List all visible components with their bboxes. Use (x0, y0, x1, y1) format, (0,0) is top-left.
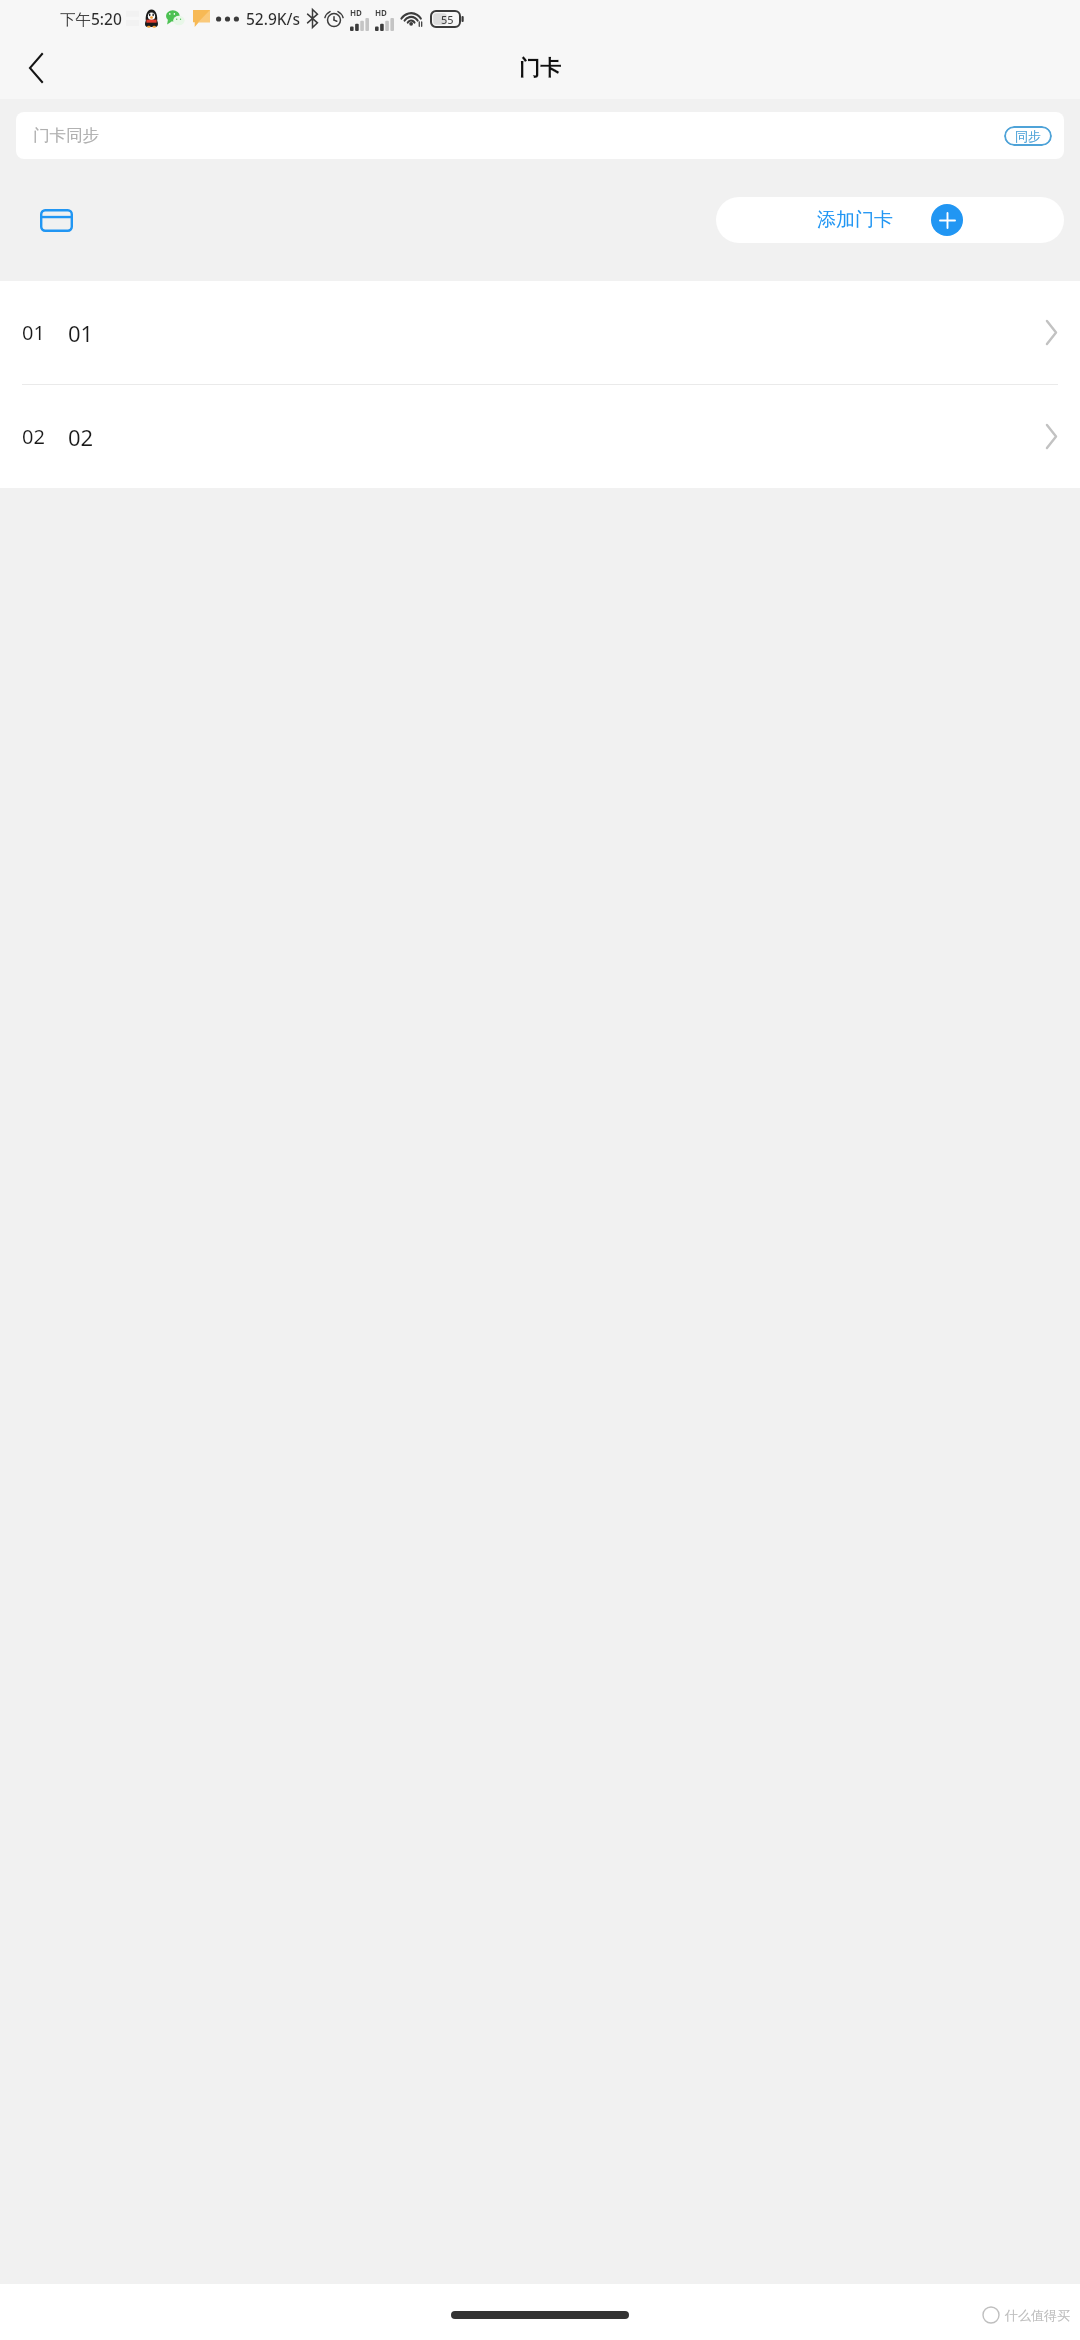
staticText: 同步 (1015, 128, 1041, 144)
button[interactable]: Back (8, 40, 64, 96)
staticText: 下午5:20 (60, 8, 122, 29)
button[interactable]: 01 (0, 281, 1080, 384)
staticText: 01 (68, 318, 94, 348)
staticText: 01 (22, 319, 45, 346)
staticText: 门卡同步 (33, 125, 99, 146)
button[interactable]: 02 (0, 385, 1080, 488)
staticText: 02 (22, 423, 45, 450)
staticText: 52.9K/s (246, 8, 301, 29)
staticText: 添加门卡 (817, 208, 893, 232)
staticText: HD (375, 7, 387, 18)
staticText: 02 (68, 422, 94, 452)
button[interactable]: 同步 (1004, 126, 1052, 146)
staticText: 55 (441, 12, 454, 27)
staticText: 什么值得买 (1005, 2307, 1070, 2323)
staticText: 门卡 (519, 55, 561, 81)
button[interactable]: 添加门卡 (716, 197, 1064, 243)
button[interactable]: 门卡同步 (16, 112, 1064, 159)
staticText: HD (350, 7, 362, 18)
